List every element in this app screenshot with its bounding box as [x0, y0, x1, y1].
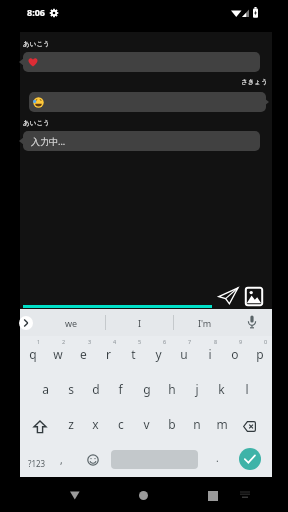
button[interactable]	[87, 454, 99, 466]
staticText: 3	[88, 338, 92, 345]
staticText: p	[256, 346, 264, 362]
staticText: 4	[113, 338, 117, 345]
staticText: w	[53, 346, 63, 362]
button[interactable]: g	[134, 372, 159, 406]
staticText: x	[92, 416, 99, 432]
staticText: b	[168, 416, 176, 432]
staticText: a	[42, 381, 49, 397]
button[interactable]: p	[247, 337, 272, 371]
staticText: I	[138, 317, 142, 329]
button[interactable]: f	[108, 372, 133, 406]
staticText: g	[143, 381, 151, 397]
button[interactable]	[247, 315, 257, 330]
button[interactable]: h	[159, 372, 184, 406]
button[interactable]: c	[108, 407, 133, 441]
staticText: j	[195, 381, 199, 397]
button[interactable]: l	[234, 372, 259, 406]
staticText: u	[180, 346, 188, 362]
staticText: f	[118, 381, 123, 397]
button[interactable]: 入力中...	[23, 131, 260, 151]
button[interactable]: s	[58, 372, 83, 406]
staticText: h	[168, 381, 176, 397]
staticText: c	[118, 416, 124, 432]
staticText: 9	[239, 338, 243, 345]
button[interactable]	[19, 316, 33, 330]
staticText: we	[65, 317, 78, 329]
button[interactable]: v	[134, 407, 159, 441]
staticText: k	[218, 381, 225, 397]
button[interactable]: n	[184, 407, 209, 441]
staticText: 2	[62, 338, 66, 345]
staticText: 1	[37, 338, 41, 345]
staticText: 7	[188, 338, 192, 345]
button[interactable]	[243, 421, 256, 432]
button[interactable]: e	[71, 337, 96, 371]
staticText: 0	[264, 338, 268, 345]
staticText: m	[216, 416, 228, 432]
staticText: さきょう	[241, 78, 268, 86]
button[interactable]	[29, 92, 266, 112]
button[interactable]: y	[146, 337, 171, 371]
button[interactable]	[240, 491, 250, 499]
button[interactable]: d	[83, 372, 108, 406]
button[interactable]	[70, 491, 80, 500]
button[interactable]	[33, 420, 47, 434]
button[interactable]: t	[121, 337, 146, 371]
staticText: i	[208, 346, 212, 362]
staticText: y	[155, 346, 162, 362]
button[interactable]: q	[20, 337, 45, 371]
button[interactable]: I'm	[174, 312, 236, 333]
staticText: z	[68, 416, 74, 432]
button[interactable]: j	[184, 372, 209, 406]
button[interactable]	[245, 287, 263, 306]
staticText: o	[231, 346, 239, 362]
button[interactable]: k	[209, 372, 234, 406]
button[interactable]	[139, 491, 148, 500]
staticText: s	[68, 381, 74, 397]
button[interactable]: ?123	[18, 450, 56, 477]
staticText: r	[106, 346, 111, 362]
staticText: I'm	[198, 317, 212, 329]
staticText: l	[245, 381, 249, 397]
staticText: 8	[214, 338, 218, 345]
staticText: .	[216, 451, 219, 465]
staticText: t	[131, 346, 136, 362]
button[interactable]	[218, 287, 239, 305]
button[interactable]: u	[171, 337, 196, 371]
staticText: n	[193, 416, 201, 432]
staticText: e	[80, 346, 87, 362]
button[interactable]: m	[209, 407, 234, 441]
staticText: d	[92, 381, 100, 397]
staticText: q	[29, 346, 37, 362]
button[interactable]: w	[45, 337, 70, 371]
button[interactable]: o	[222, 337, 247, 371]
button[interactable]: we	[36, 312, 106, 333]
staticText: 入力中...	[31, 135, 66, 147]
button[interactable]: i	[197, 337, 222, 371]
button[interactable]: r	[96, 337, 121, 371]
staticText: 6	[163, 338, 167, 345]
button[interactable]	[239, 448, 261, 470]
staticText: 5	[138, 338, 142, 345]
staticText: 8:06	[27, 6, 45, 18]
staticText: v	[143, 416, 150, 432]
staticText: あいこう	[23, 40, 50, 48]
staticText: ?123	[28, 458, 46, 469]
staticText: ,	[60, 453, 63, 467]
button[interactable]: I	[110, 312, 170, 333]
button[interactable]	[23, 52, 260, 72]
button[interactable]: a	[33, 372, 58, 406]
button[interactable]: x	[83, 407, 108, 441]
staticText: あいこう	[23, 119, 50, 127]
button[interactable]: b	[159, 407, 184, 441]
button[interactable]: z	[58, 407, 83, 441]
